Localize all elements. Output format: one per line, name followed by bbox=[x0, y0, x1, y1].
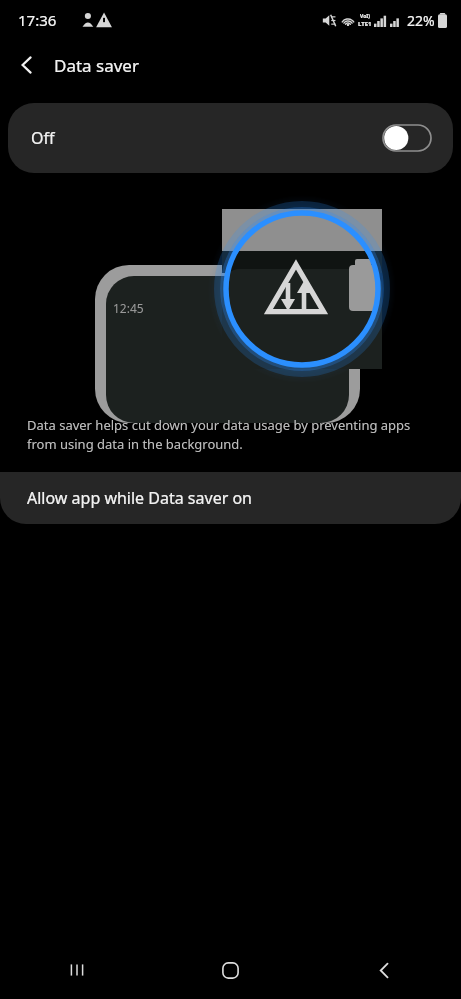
staticText: LTE1 bbox=[358, 20, 372, 28]
staticText: Allow app while Data saver on bbox=[27, 487, 252, 509]
button[interactable]: Recent apps bbox=[0, 941, 153, 999]
staticText: 22% bbox=[407, 11, 435, 30]
button[interactable]: Back bbox=[307, 941, 461, 999]
staticText: VoI) bbox=[360, 13, 370, 20]
button[interactable]: Back bbox=[0, 40, 54, 90]
button[interactable]: Home bbox=[153, 941, 307, 999]
staticText: Data saver bbox=[54, 54, 139, 77]
staticText: Data saver helps cut down your data usag… bbox=[27, 416, 434, 453]
staticText: Off bbox=[31, 127, 55, 149]
staticText: 12:45 bbox=[113, 300, 144, 316]
button[interactable]: Off bbox=[8, 103, 453, 173]
button[interactable]: Allow app while Data saver on bbox=[0, 472, 461, 524]
staticText: 17:36 bbox=[18, 10, 57, 30]
